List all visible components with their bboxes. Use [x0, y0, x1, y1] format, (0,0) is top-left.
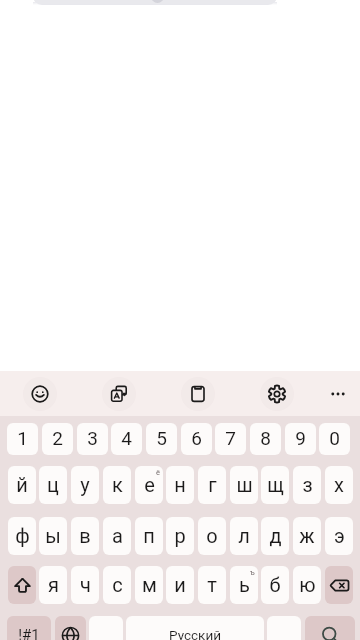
staticText: 1 — [17, 427, 28, 449]
button[interactable]: и — [166, 566, 194, 604]
button[interactable]: 3 — [77, 423, 108, 455]
staticText: ж — [299, 524, 315, 547]
staticText: г — [208, 473, 217, 496]
staticText: 5 — [156, 427, 167, 449]
button[interactable]: р — [166, 517, 194, 555]
staticText: к — [112, 473, 123, 496]
staticText: ё — [156, 468, 160, 477]
button[interactable]: 9 — [285, 423, 316, 455]
staticText: 9 — [295, 427, 306, 449]
button[interactable]: 6 — [181, 423, 212, 455]
button[interactable]: 2 — [42, 423, 73, 455]
button[interactable]: т — [198, 566, 226, 604]
button[interactable]: Emoji — [23, 377, 57, 411]
button[interactable]: , — [89, 616, 123, 640]
staticText: ц — [47, 473, 59, 496]
button[interactable]: к — [103, 466, 131, 504]
button[interactable]: 8 — [250, 423, 281, 455]
button[interactable]: 4 — [111, 423, 142, 455]
button[interactable]: о — [198, 517, 226, 555]
button[interactable]: 0 — [319, 423, 350, 455]
staticText: в — [79, 524, 91, 547]
button[interactable]: Translate — [102, 377, 136, 411]
staticText: т — [207, 573, 217, 596]
button[interactable]: ц — [39, 466, 67, 504]
button[interactable]: п — [135, 517, 163, 555]
staticText: о — [206, 524, 218, 547]
staticText: е — [144, 473, 155, 496]
button[interactable]: з — [293, 466, 321, 504]
button[interactable]: ф — [8, 517, 36, 555]
staticText: 3 — [87, 427, 98, 449]
button[interactable]: л — [230, 517, 258, 555]
staticText: э — [334, 524, 345, 547]
staticText: 6 — [191, 427, 202, 449]
button[interactable]: э — [325, 517, 353, 555]
staticText: м — [142, 573, 157, 596]
button[interactable]: й — [8, 466, 36, 504]
staticText: 4 — [121, 427, 132, 449]
staticText: ю — [299, 573, 316, 596]
button[interactable]: ж — [293, 517, 321, 555]
button[interactable]: 1 — [7, 423, 38, 455]
button[interactable]: е — [135, 466, 163, 504]
button[interactable]: м — [135, 566, 163, 604]
button[interactable]: в — [71, 517, 99, 555]
button[interactable]: х — [325, 466, 353, 504]
button[interactable]: я — [39, 566, 67, 604]
staticText: с — [112, 573, 123, 596]
staticText: з — [302, 473, 313, 496]
button[interactable]: Русский — [126, 616, 264, 640]
staticText: п — [143, 524, 155, 547]
button[interactable]: б — [261, 566, 289, 604]
button[interactable]: 7 — [215, 423, 246, 455]
staticText: ы — [45, 524, 61, 547]
button[interactable]: . — [267, 616, 301, 640]
staticText: ф — [15, 524, 30, 547]
button[interactable]: щ — [261, 466, 289, 504]
button[interactable]: 5 — [146, 423, 177, 455]
staticText: щ — [267, 473, 284, 496]
staticText: х — [334, 473, 344, 496]
staticText: и — [174, 573, 186, 596]
button[interactable]: Change keyboard — [55, 616, 86, 640]
staticText: 2 — [52, 427, 63, 449]
button[interactable]: с — [103, 566, 131, 604]
button[interactable]: ч — [71, 566, 99, 604]
button[interactable]: Clipboard — [181, 377, 215, 411]
staticText: ш — [236, 473, 253, 496]
button[interactable]: у — [71, 466, 99, 504]
staticText: ъ — [250, 568, 255, 577]
button[interactable]: ь — [230, 566, 258, 604]
staticText: б — [269, 573, 281, 596]
button[interactable]: д — [261, 517, 289, 555]
staticText: 7 — [225, 427, 236, 449]
staticText: ч — [80, 573, 91, 596]
staticText: р — [174, 524, 186, 547]
staticText: !#1 — [18, 626, 40, 640]
button[interactable]: ю — [293, 566, 321, 604]
staticText: н — [174, 473, 186, 496]
staticText: й — [16, 473, 28, 496]
staticText: Русский — [169, 627, 221, 640]
button[interactable]: н — [166, 466, 194, 504]
button[interactable]: ш — [230, 466, 258, 504]
staticText: я — [48, 573, 59, 596]
staticText: 8 — [260, 427, 271, 449]
staticText: л — [238, 524, 250, 547]
button[interactable]: Shift — [8, 566, 36, 604]
button[interactable]: Search — [305, 616, 355, 640]
staticText: ь — [239, 573, 250, 596]
button[interactable]: а — [103, 517, 131, 555]
button[interactable]: !#1 — [7, 616, 51, 640]
button[interactable]: Keyboard settings — [260, 377, 294, 411]
button[interactable]: Backspace — [325, 566, 353, 604]
button[interactable]: ы — [39, 517, 67, 555]
button[interactable]: г — [198, 466, 226, 504]
button[interactable]: More options — [321, 377, 355, 411]
staticText: а — [112, 524, 123, 547]
staticText: у — [80, 473, 90, 496]
staticText: д — [269, 524, 282, 547]
